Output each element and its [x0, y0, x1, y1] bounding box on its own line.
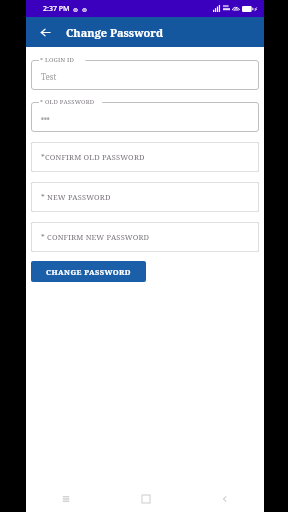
- staticText: * LOGIN ID: [40, 56, 74, 64]
- button[interactable]: * CONFIRM NEW PASSWORD: [31, 222, 259, 252]
- staticText: •••: [41, 113, 50, 124]
- staticText: * CONFIRM NEW PASSWORD: [41, 232, 150, 242]
- button[interactable]: * LOGIN ID: [31, 56, 259, 90]
- button[interactable]: Recent apps: [26, 486, 106, 512]
- staticText: *CONFIRM OLD PASSWORD: [41, 152, 145, 162]
- staticText: Test: [41, 71, 57, 82]
- button[interactable]: *CONFIRM OLD PASSWORD: [31, 142, 259, 172]
- staticText: ⊜: [82, 6, 88, 13]
- staticText: ⚡: [254, 6, 258, 12]
- button[interactable]: Home: [106, 486, 185, 512]
- button[interactable]: CHANGE PASSWORD: [31, 261, 146, 282]
- staticText: * OLD PASSWORD: [40, 98, 95, 106]
- staticText: * NEW PASSWORD: [41, 192, 111, 202]
- staticText: CHANGE PASSWORD: [46, 267, 131, 277]
- staticText: ⊜: [73, 6, 79, 13]
- button[interactable]: Back: [34, 21, 56, 43]
- staticText: Change Password: [66, 25, 164, 40]
- staticText: 2:37 PM: [43, 4, 70, 14]
- button[interactable]: * OLD PASSWORD: [31, 98, 259, 132]
- button[interactable]: * NEW PASSWORD: [31, 182, 259, 212]
